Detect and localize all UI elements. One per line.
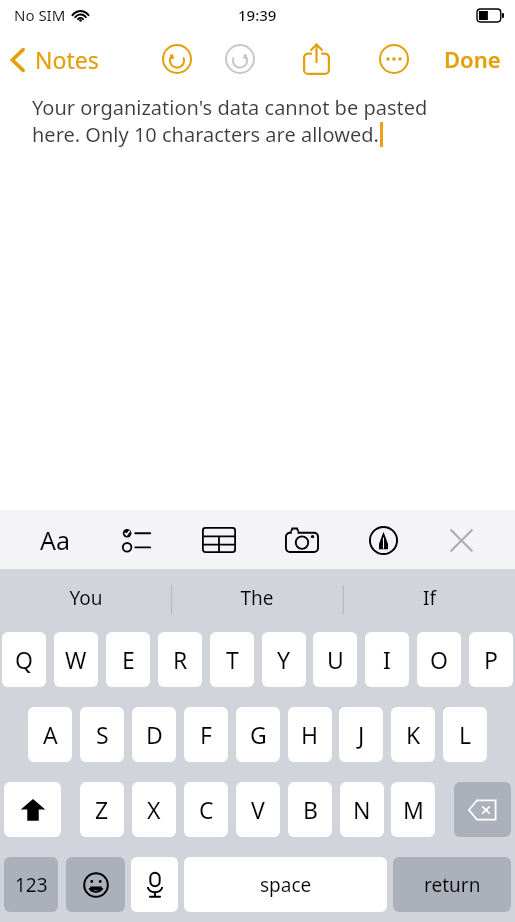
staticText: H: [301, 719, 319, 750]
button[interactable]: Text format: [34, 517, 77, 563]
button[interactable]: Emoji: [66, 857, 125, 912]
button[interactable]: A: [28, 707, 72, 762]
button[interactable]: Z: [80, 782, 124, 837]
staticText: O: [430, 644, 448, 675]
button[interactable]: Notes: [0, 38, 107, 81]
button[interactable]: Markup: [363, 520, 404, 561]
button[interactable]: C: [184, 782, 228, 837]
button[interactable]: Checklist: [115, 521, 158, 559]
button[interactable]: Q: [2, 632, 46, 687]
staticText: K: [406, 719, 421, 750]
staticText: L: [459, 719, 472, 750]
staticText: U: [327, 644, 344, 675]
button[interactable]: V: [236, 782, 280, 837]
button[interactable]: Dictate: [131, 857, 178, 912]
staticText: No SIM: [14, 5, 66, 25]
button[interactable]: Backspace: [454, 782, 511, 837]
button[interactable]: I: [365, 632, 409, 687]
button[interactable]: The: [171, 569, 343, 627]
button[interactable]: S: [80, 707, 124, 762]
staticText: If: [423, 585, 436, 611]
staticText: return: [424, 872, 481, 898]
staticText: G: [250, 719, 267, 750]
staticText: Z: [95, 794, 109, 825]
button[interactable]: Redo: [219, 38, 261, 80]
button[interactable]: You: [0, 569, 171, 627]
staticText: W: [65, 644, 87, 675]
button[interactable]: return: [393, 857, 511, 912]
staticText: N: [353, 794, 371, 825]
staticText: A: [43, 719, 58, 750]
button[interactable]: T: [210, 632, 254, 687]
staticText: You: [69, 585, 103, 611]
staticText: S: [96, 719, 109, 750]
button[interactable]: Table: [196, 521, 242, 559]
button[interactable]: Y: [262, 632, 306, 687]
button[interactable]: O: [417, 632, 461, 687]
staticText: C: [199, 794, 214, 825]
button[interactable]: G: [236, 707, 280, 762]
button[interactable]: Close keyboard: [442, 521, 481, 560]
staticText: 19:39: [238, 5, 277, 25]
staticText: E: [122, 644, 135, 675]
staticText: Notes: [35, 44, 99, 75]
staticText: The: [240, 585, 274, 611]
staticText: X: [147, 794, 161, 825]
staticText: Aa: [40, 523, 71, 557]
staticText: Q: [15, 644, 33, 675]
staticText: space: [260, 872, 312, 898]
staticText: J: [358, 719, 365, 750]
button[interactable]: More options: [373, 38, 415, 80]
button[interactable]: F: [184, 707, 228, 762]
button[interactable]: N: [340, 782, 384, 837]
button[interactable]: 123: [4, 857, 58, 912]
button[interactable]: X: [132, 782, 176, 837]
staticText: I: [383, 644, 391, 675]
staticText: R: [173, 644, 188, 675]
staticText: 123: [15, 872, 48, 898]
button[interactable]: B: [288, 782, 332, 837]
button[interactable]: H: [288, 707, 332, 762]
staticText: F: [200, 719, 212, 750]
button[interactable]: W: [54, 632, 98, 687]
staticText: T: [226, 644, 239, 675]
button[interactable]: U: [313, 632, 357, 687]
button[interactable]: Camera: [279, 521, 325, 559]
staticText: here. Only 10 characters are allowed.: [32, 121, 379, 148]
button[interactable]: E: [106, 632, 150, 687]
button[interactable]: P: [469, 632, 513, 687]
button[interactable]: L: [443, 707, 487, 762]
button[interactable]: If: [343, 569, 515, 627]
staticText: Done: [444, 44, 501, 74]
staticText: B: [303, 794, 318, 825]
button[interactable]: Undo: [156, 38, 198, 80]
button[interactable]: R: [158, 632, 202, 687]
staticText: D: [146, 719, 163, 750]
button[interactable]: Shift: [4, 782, 61, 837]
button[interactable]: J: [339, 707, 383, 762]
button[interactable]: Done: [430, 36, 515, 82]
staticText: V: [251, 794, 265, 825]
staticText: Your organization's data cannot be paste…: [32, 94, 428, 121]
button[interactable]: K: [391, 707, 435, 762]
button[interactable]: D: [132, 707, 176, 762]
staticText: P: [484, 644, 498, 675]
button[interactable]: M: [391, 782, 435, 837]
button[interactable]: Share: [297, 37, 336, 81]
staticText: Y: [277, 644, 291, 675]
staticText: M: [403, 794, 424, 825]
button[interactable]: space: [184, 857, 387, 912]
